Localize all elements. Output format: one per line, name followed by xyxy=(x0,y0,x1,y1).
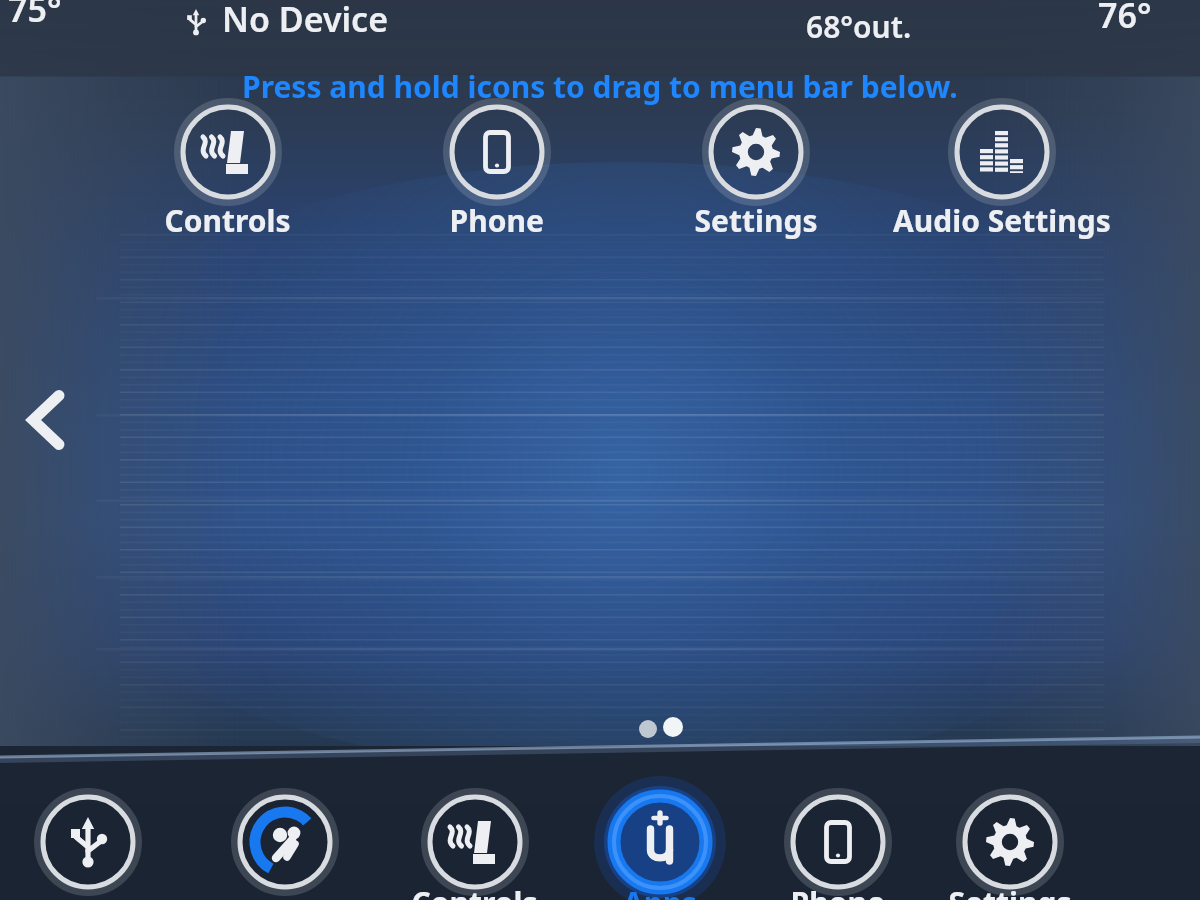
button[interactable]: USB xyxy=(8,766,168,900)
button[interactable] xyxy=(912,90,1092,240)
button[interactable]: Back xyxy=(10,384,82,456)
button[interactable] xyxy=(407,90,587,240)
button[interactable]: Media player xyxy=(205,766,365,900)
button[interactable] xyxy=(666,90,846,240)
button[interactable] xyxy=(138,90,318,240)
button[interactable] xyxy=(395,766,555,900)
button[interactable] xyxy=(580,766,740,900)
button[interactable] xyxy=(758,766,918,900)
button[interactable] xyxy=(930,766,1090,900)
